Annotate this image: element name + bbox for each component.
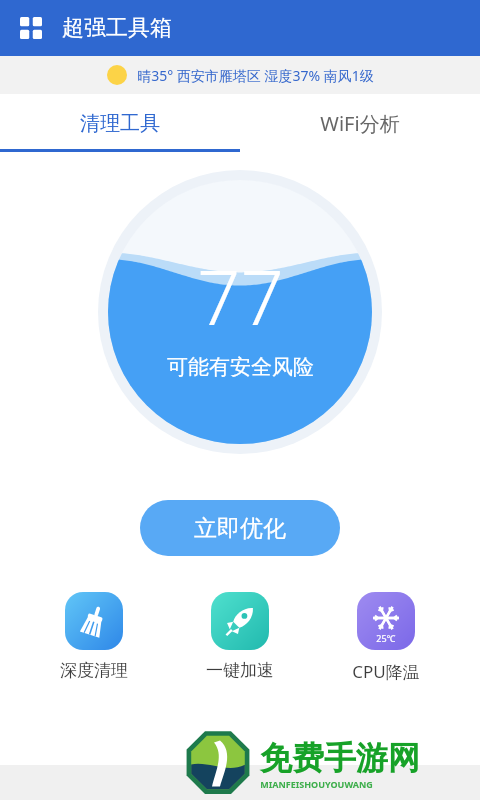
button[interactable]: 一键加速 bbox=[180, 590, 300, 683]
staticText: CPU降温 bbox=[352, 660, 420, 683]
button[interactable]: WiFi分析 bbox=[240, 94, 480, 152]
staticText: 立即优化 bbox=[194, 514, 286, 543]
button[interactable]: 25℃ bbox=[326, 590, 446, 685]
staticText: 77 bbox=[197, 244, 284, 348]
staticText: 25℃ bbox=[376, 632, 396, 644]
button[interactable]: 清理工具 bbox=[0, 94, 240, 152]
staticText: MIANFEISHOUYOUWANG bbox=[260, 778, 373, 790]
button[interactable]: 晴35° 西安市雁塔区 湿度37% 南风1级 bbox=[0, 56, 480, 94]
staticText: WiFi分析 bbox=[320, 110, 400, 137]
staticText: 一键加速 bbox=[206, 660, 274, 681]
button[interactable]: 深度清理 bbox=[34, 590, 154, 683]
staticText: 可能有安全风险 bbox=[167, 354, 314, 380]
button[interactable]: 立即优化 bbox=[140, 500, 340, 556]
staticText: 晴35° 西安市雁塔区 湿度37% 南风1级 bbox=[137, 66, 374, 85]
staticText: 超强工具箱 bbox=[62, 14, 172, 42]
staticText: 深度清理 bbox=[60, 660, 128, 681]
button[interactable]: Apps bbox=[14, 11, 48, 45]
staticText: 清理工具 bbox=[80, 111, 160, 136]
staticText: 免费手游网 bbox=[260, 738, 420, 778]
